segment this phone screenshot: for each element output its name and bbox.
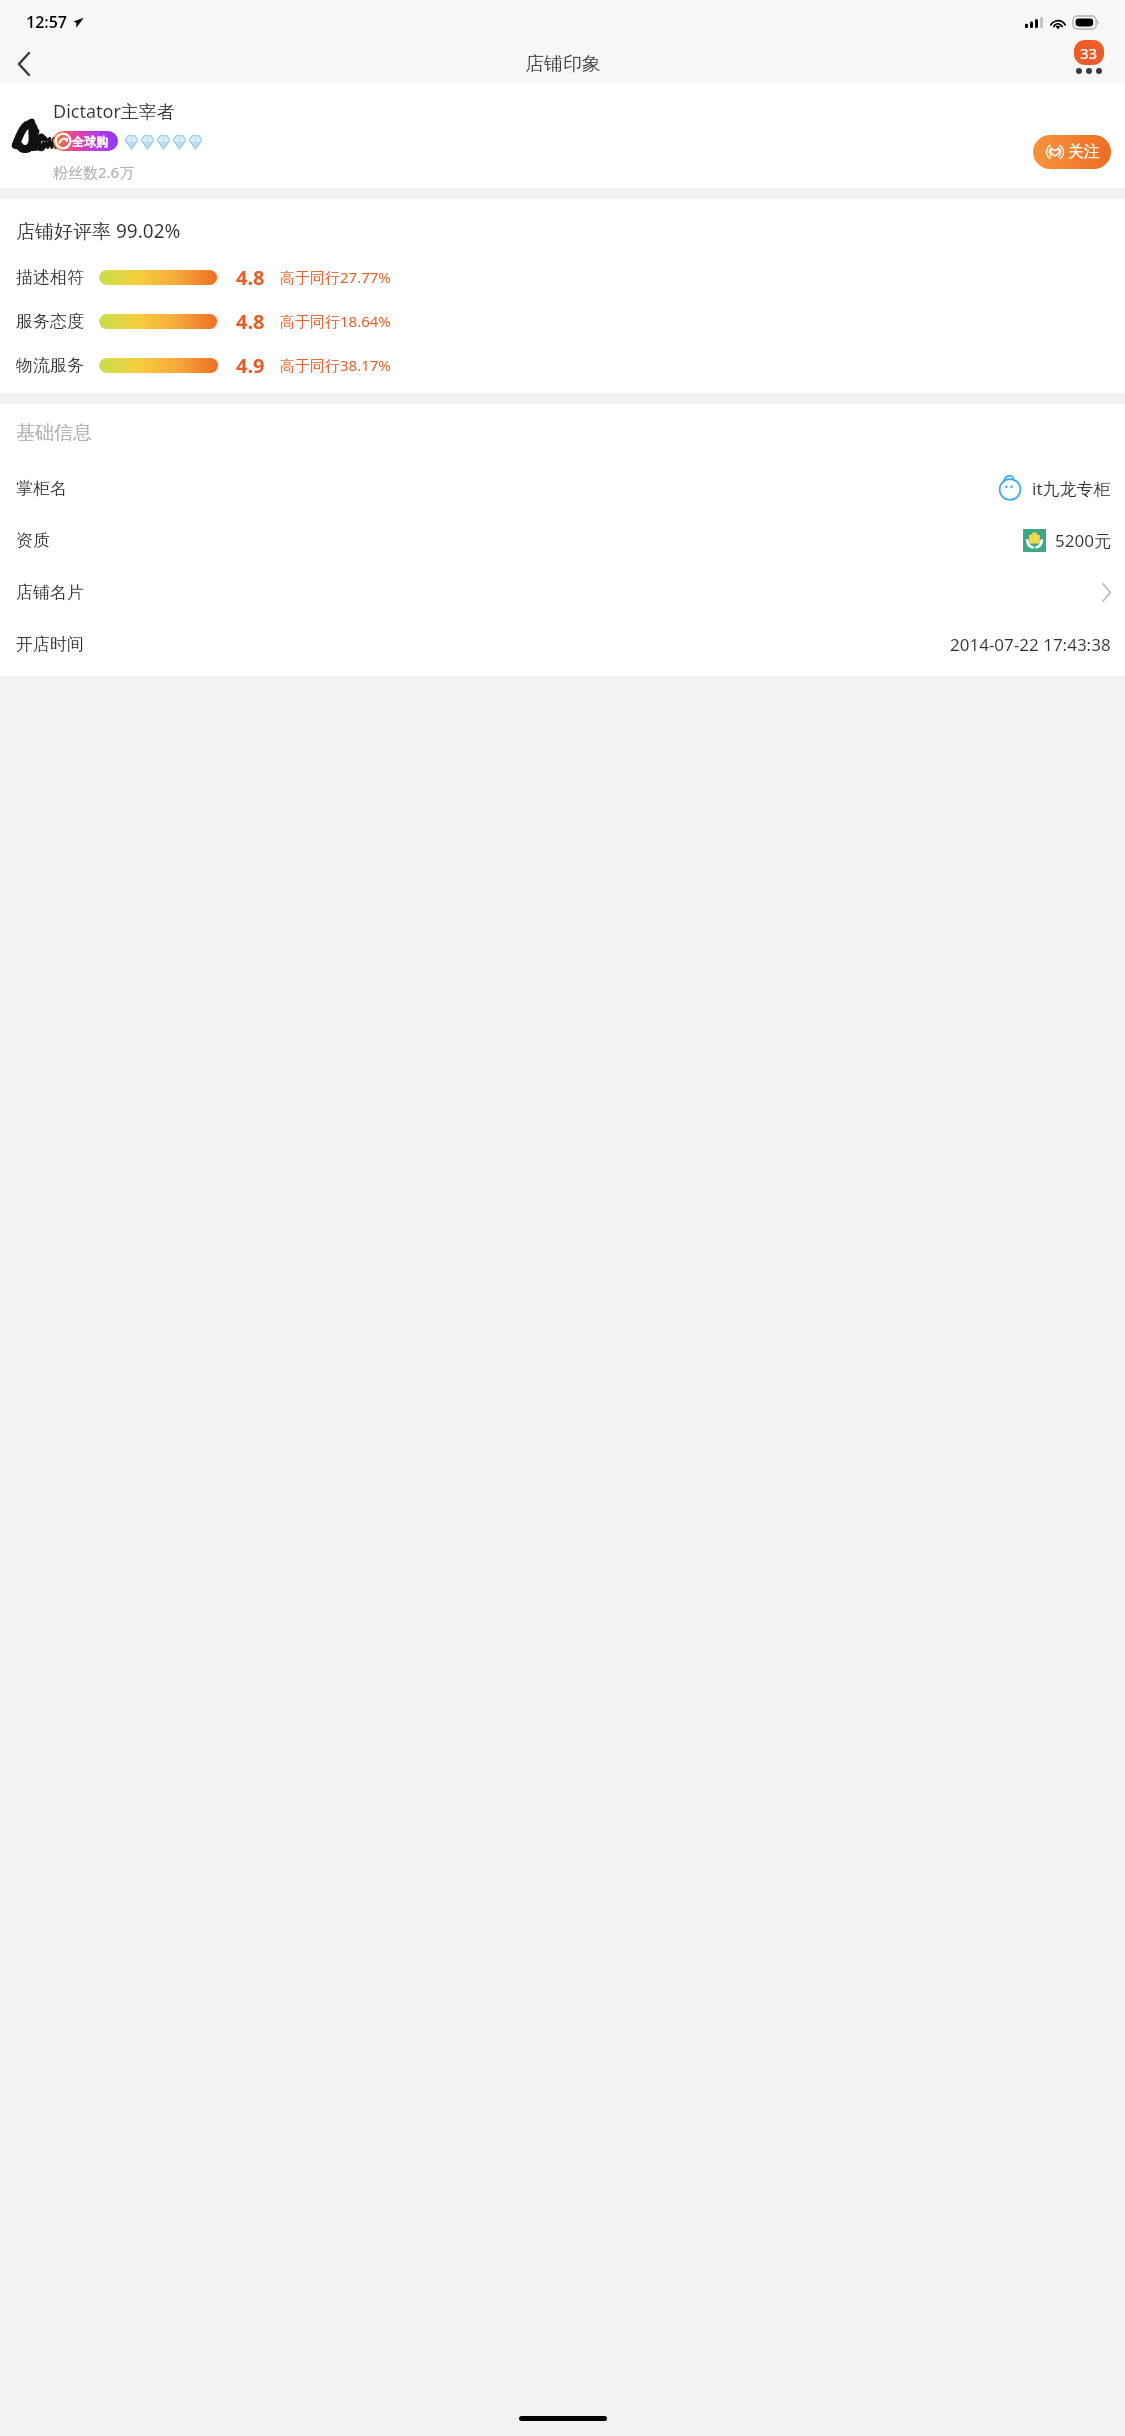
staticText: 5200元 bbox=[1055, 529, 1111, 552]
button[interactable]: 关注 bbox=[1033, 135, 1111, 169]
staticText: 基础信息 bbox=[16, 421, 92, 445]
staticText: 4.8 bbox=[236, 264, 265, 291]
staticText: 资质 bbox=[16, 530, 50, 551]
staticText: 4.9 bbox=[236, 352, 265, 379]
staticText: 店铺印象 bbox=[525, 52, 601, 76]
staticText: it九龙专柜 bbox=[1032, 477, 1111, 500]
staticText: 关注 bbox=[1068, 142, 1100, 162]
staticText: 描述相符 bbox=[16, 267, 84, 288]
staticText: 粉丝数2.6万 bbox=[53, 162, 135, 182]
staticText: 开店时间 bbox=[16, 634, 84, 655]
staticText: 掌柜名 bbox=[16, 478, 67, 499]
button[interactable]: 掌柜名 bbox=[0, 462, 1125, 514]
button[interactable]: Back bbox=[0, 44, 48, 83]
staticText: 高于同行18.64% bbox=[280, 311, 391, 331]
staticText: 33 bbox=[1080, 43, 1098, 63]
button[interactable]: More options bbox=[1065, 44, 1113, 83]
staticText: 2014-07-22 17:43:38 bbox=[950, 633, 1111, 656]
staticText: Dictator主宰者 bbox=[53, 99, 175, 124]
staticText: 4.8 bbox=[236, 308, 265, 335]
staticText: 高于同行27.77% bbox=[280, 267, 391, 287]
staticText: 店铺名片 bbox=[16, 582, 84, 603]
staticText: 全球购 bbox=[72, 134, 108, 149]
button[interactable]: 资质 bbox=[0, 514, 1125, 566]
staticText: 高于同行38.17% bbox=[280, 355, 391, 375]
button[interactable]: 店铺名片 bbox=[0, 566, 1125, 618]
staticText: 物流服务 bbox=[16, 355, 84, 376]
staticText: 店铺好评率 99.02% bbox=[16, 218, 181, 244]
staticText: 服务态度 bbox=[16, 311, 84, 332]
staticText: 12:57 bbox=[26, 11, 68, 33]
